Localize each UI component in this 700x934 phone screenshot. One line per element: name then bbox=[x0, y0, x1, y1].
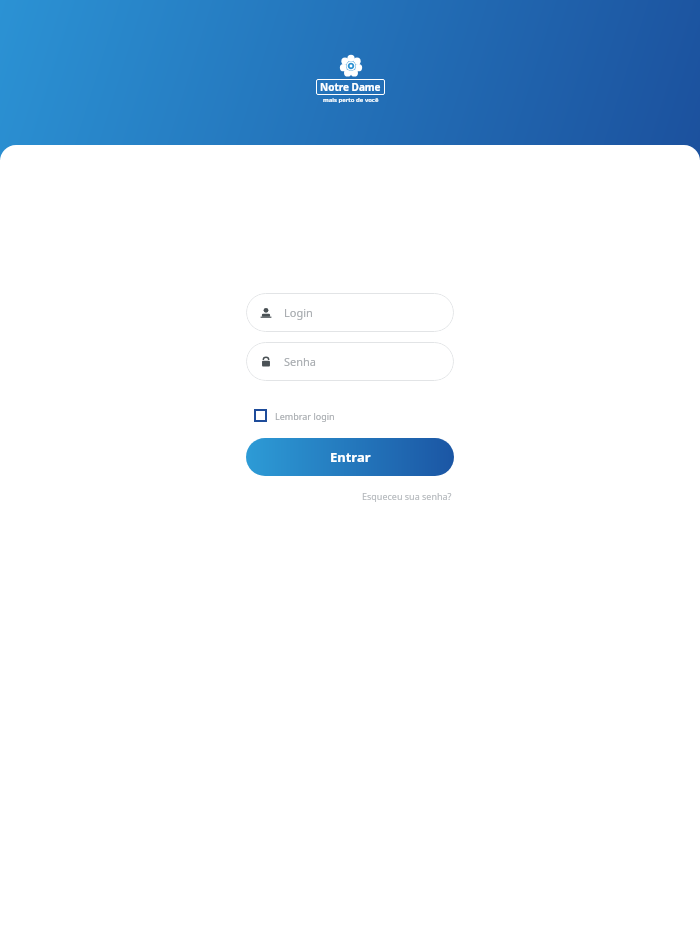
button[interactable]: Esqueceu sua senha? bbox=[360, 488, 454, 504]
staticText: Notre Dame bbox=[320, 80, 381, 94]
button[interactable]: Senha bbox=[246, 342, 454, 381]
staticText: Entrar bbox=[330, 448, 371, 466]
staticText: Lembrar login bbox=[275, 410, 335, 422]
button[interactable]: Lembrar login bbox=[254, 405, 335, 426]
staticText: mais perto de você bbox=[323, 96, 379, 104]
button[interactable]: Entrar bbox=[246, 438, 454, 476]
staticText: Esqueceu sua senha? bbox=[362, 490, 452, 502]
staticText: Login bbox=[284, 305, 313, 320]
button[interactable]: Login bbox=[246, 293, 454, 332]
staticText: Senha bbox=[284, 354, 317, 369]
